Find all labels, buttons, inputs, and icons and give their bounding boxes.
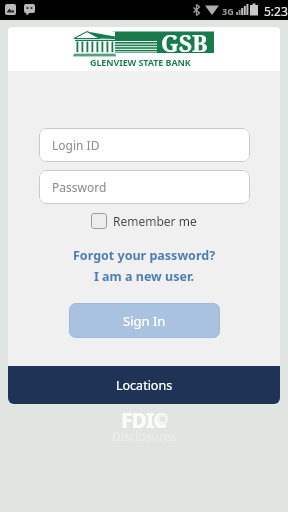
button[interactable]: Sign In — [69, 303, 220, 338]
button[interactable]: Locations — [8, 366, 280, 404]
staticText: Login ID — [52, 137, 100, 153]
staticText: GSB — [161, 27, 208, 58]
button[interactable]: Password — [39, 170, 250, 204]
button[interactable]: Login ID — [39, 128, 250, 162]
staticText: 5:23 — [264, 3, 288, 19]
staticText: Locations — [116, 377, 173, 394]
staticText: 3G — [222, 5, 234, 17]
staticText: Sign In — [123, 312, 166, 330]
staticText: FDIC — [121, 406, 167, 435]
staticText: Disclosures — [112, 428, 177, 444]
button[interactable]: I am a new user. — [94, 268, 195, 285]
button[interactable]: Remember me — [91, 213, 197, 229]
staticText: GLENVIEW STATE BANK — [90, 56, 191, 68]
staticText: Password — [52, 179, 107, 195]
staticText: Remember me — [113, 213, 197, 229]
button[interactable]: Forgot your password? — [73, 247, 216, 264]
